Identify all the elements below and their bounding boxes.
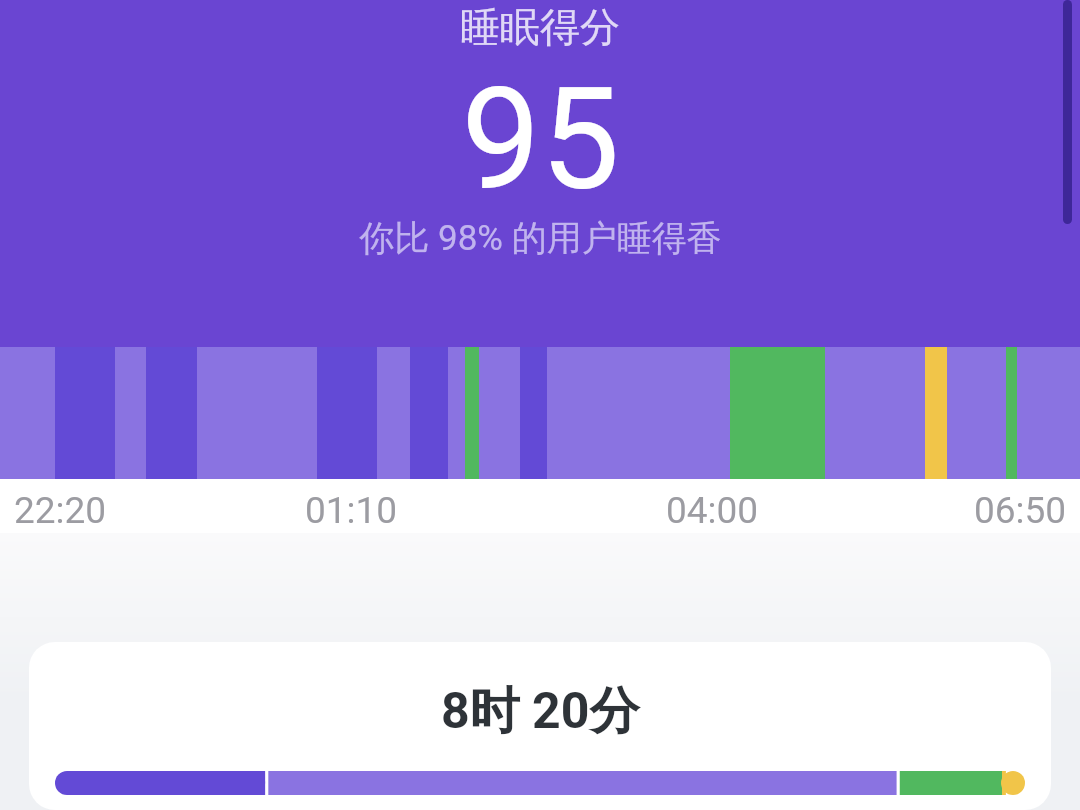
staticText: 8时 20分: [441, 680, 640, 743]
button[interactable]: 8时 20分: [29, 642, 1051, 810]
staticText: 01:10: [305, 489, 398, 532]
staticText: 22:20: [14, 489, 107, 532]
staticText: 04:00: [666, 489, 759, 532]
staticText: 睡眠得分: [460, 2, 620, 52]
staticText: 06:50: [974, 489, 1067, 532]
staticText: 95: [461, 57, 620, 222]
staticText: 你比 98% 的用户睡得香: [359, 216, 722, 260]
